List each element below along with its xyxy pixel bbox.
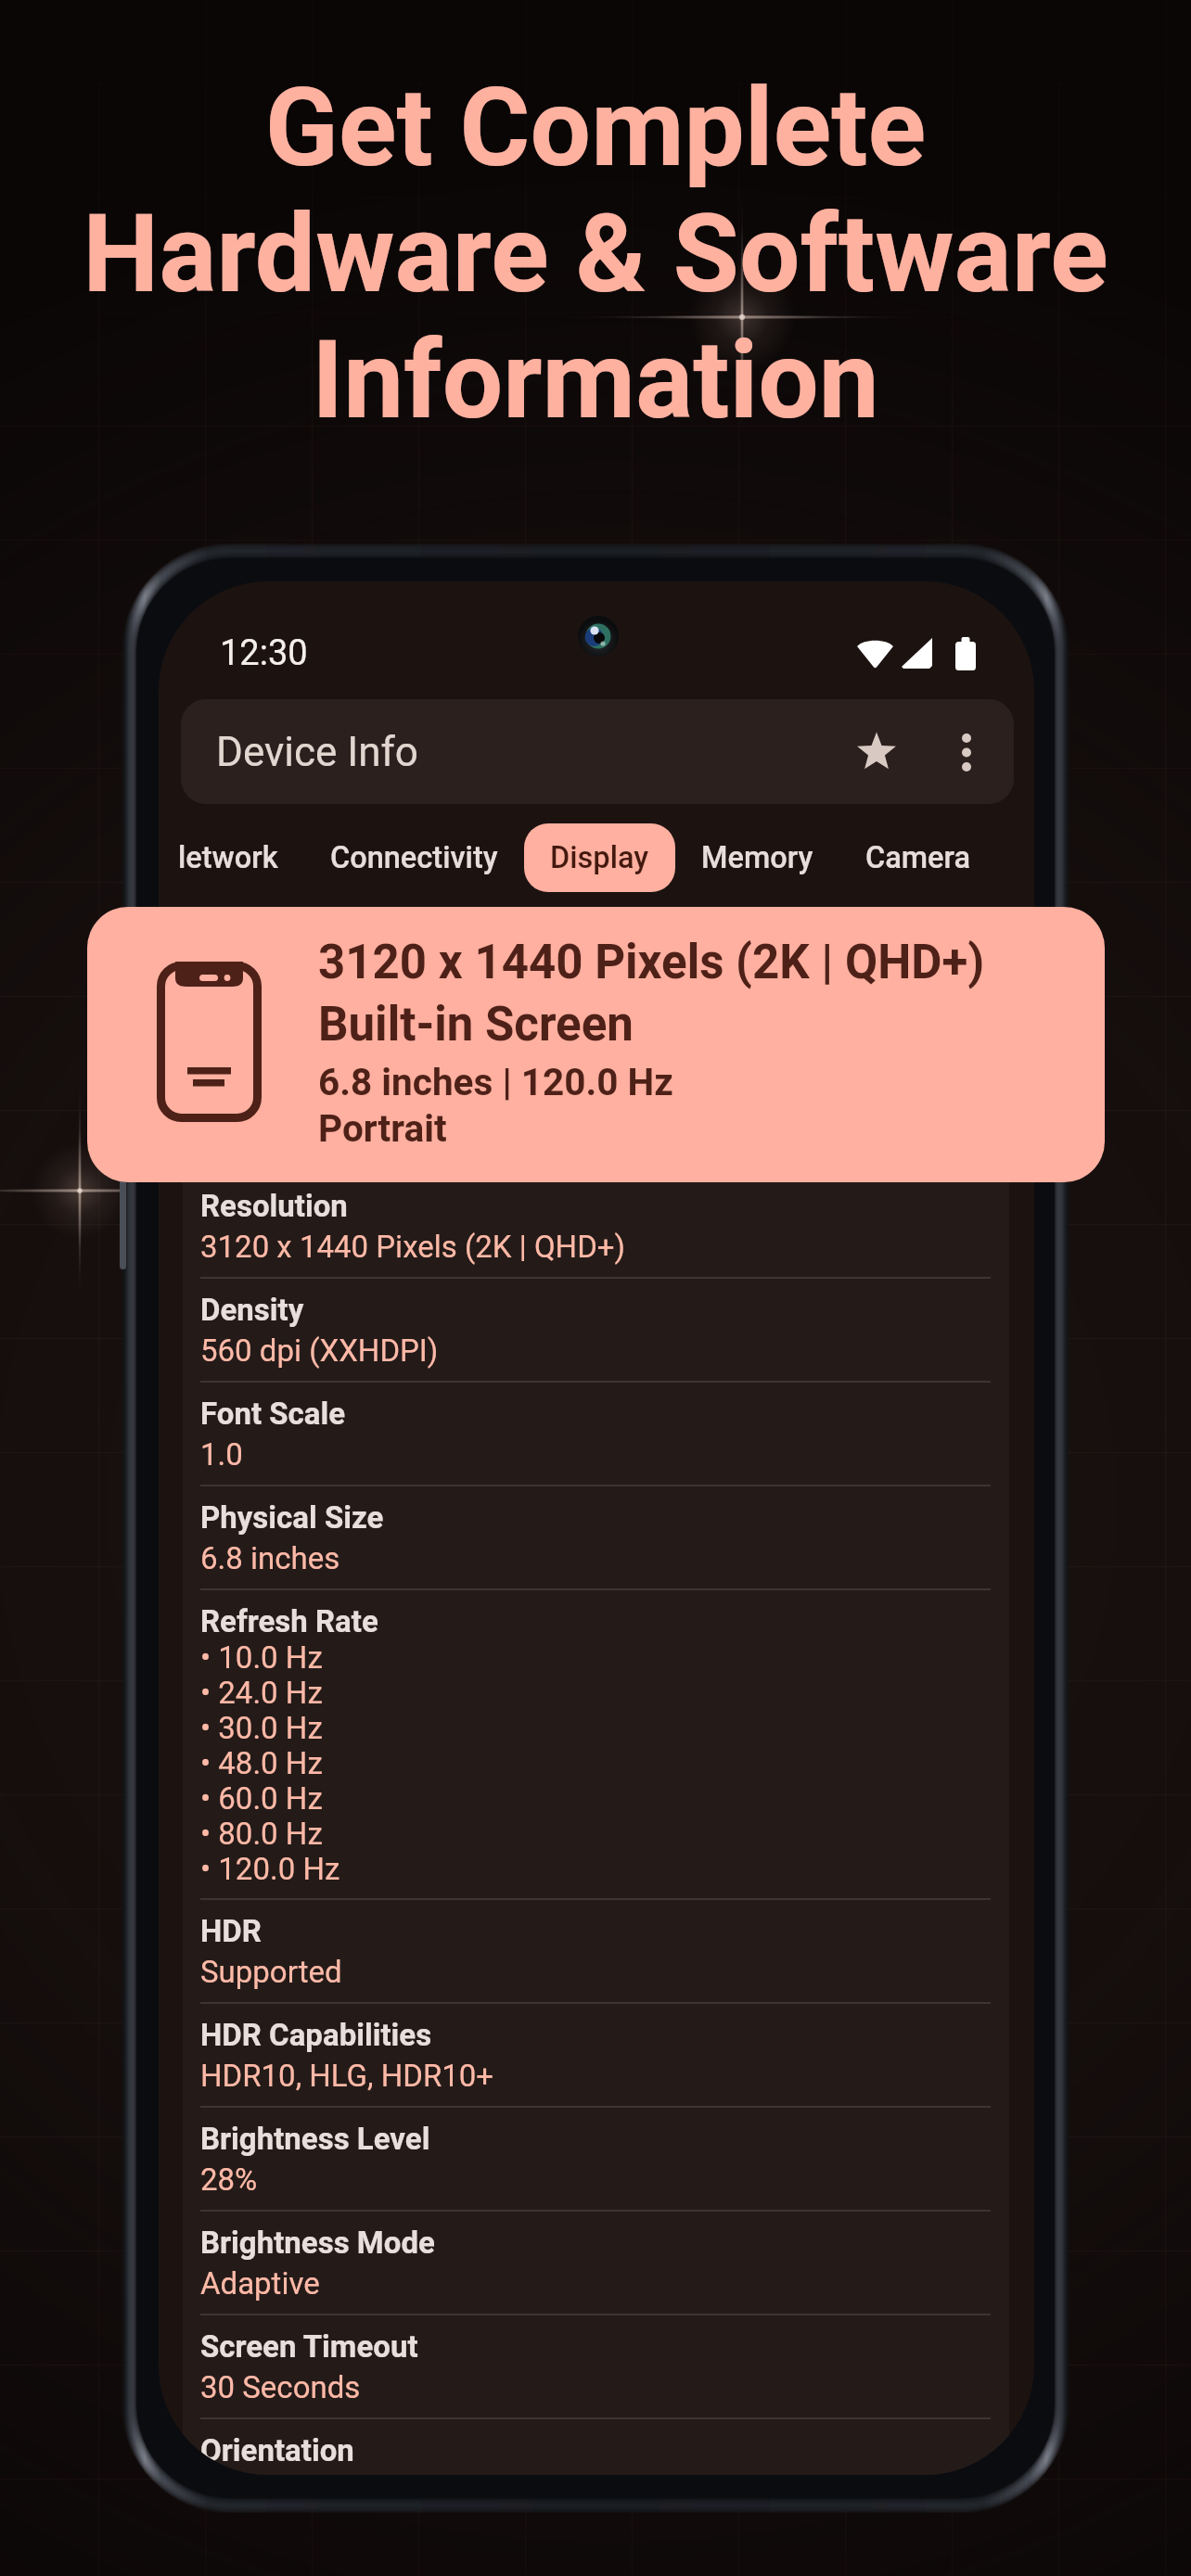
staticText: 3120 x 1440 Pixels (2K | QHD+) xyxy=(318,935,985,990)
button[interactable]: 3120 x 1440 Pixels (2K | QHD+) xyxy=(87,907,1105,1182)
staticText: • 24.0 Hz xyxy=(200,1675,323,1710)
button[interactable]: Brightness Mode xyxy=(183,2212,1009,2315)
staticText: Get Complete xyxy=(0,65,1191,191)
staticText: Display xyxy=(550,840,649,875)
staticText: Density xyxy=(200,1292,304,1328)
staticText: Physical Size xyxy=(200,1499,384,1536)
staticText: 560 dpi (XXHDPI) xyxy=(200,1333,439,1369)
staticText: • 48.0 Hz xyxy=(200,1745,323,1780)
staticText: 6.8 inches xyxy=(200,1540,340,1576)
staticText: Font Scale xyxy=(200,1396,346,1432)
staticText: HDR Capabilities xyxy=(200,2017,432,2053)
staticText: Information xyxy=(0,317,1191,443)
button[interactable]: Brightness Level xyxy=(183,2108,1009,2212)
staticText: • 10.0 Hz xyxy=(200,1639,323,1675)
button[interactable]: Orientation xyxy=(183,2419,1009,2475)
button[interactable]: Camera xyxy=(839,823,997,892)
staticText: 28% xyxy=(200,2162,258,2198)
staticText: Portrait xyxy=(318,1106,447,1150)
button[interactable]: Memory xyxy=(675,823,839,892)
staticText: • 60.0 Hz xyxy=(200,1780,323,1816)
staticText: Device Info xyxy=(216,728,418,776)
button[interactable]: Favorite xyxy=(847,722,906,782)
staticText: 12:30 xyxy=(220,632,308,674)
button[interactable]: HDR Capabilities xyxy=(183,2004,1009,2108)
staticText: Hardware & Software xyxy=(0,191,1191,317)
button[interactable]: Display xyxy=(524,823,675,892)
button[interactable]: HDR xyxy=(183,1900,1009,2004)
staticText: HDR10, HLG, HDR10+ xyxy=(200,2058,494,2094)
staticText: HDR xyxy=(200,1913,262,1949)
button[interactable]: Density xyxy=(183,1279,1009,1383)
staticText: Supported xyxy=(200,1954,342,1990)
button[interactable]: Refresh Rate xyxy=(183,1590,1009,1900)
button[interactable]: Font Scale xyxy=(183,1383,1009,1486)
staticText: 1.0 xyxy=(200,1436,243,1473)
button[interactable]: Device Info xyxy=(181,699,1014,804)
button[interactable]: Physical Size xyxy=(183,1486,1009,1590)
staticText: 3120 x 1440 Pixels (2K | QHD+) xyxy=(200,1229,626,1265)
button[interactable]: Resolution xyxy=(183,1175,1009,1279)
staticText: letwork xyxy=(178,840,278,875)
staticText: 6.8 inches | 120.0 Hz xyxy=(318,1060,673,1103)
staticText: Adaptive xyxy=(200,2265,320,2302)
staticText: • 30.0 Hz xyxy=(200,1710,323,1745)
button[interactable]: Screen Timeout xyxy=(183,2315,1009,2419)
staticText: Brightness Level xyxy=(200,2121,430,2157)
staticText: Connectivity xyxy=(330,840,498,875)
staticText: 30 Seconds xyxy=(200,2369,361,2405)
staticText: Resolution xyxy=(200,1188,348,1224)
staticText: Screen Timeout xyxy=(200,2328,418,2365)
staticText: Brightness Mode xyxy=(200,2225,435,2261)
button[interactable]: Connectivity xyxy=(304,823,524,892)
staticText: Orientation xyxy=(200,2432,354,2468)
staticText: Refresh Rate xyxy=(200,1603,378,1639)
staticText: • 80.0 Hz xyxy=(200,1816,323,1851)
button[interactable]: letwork xyxy=(159,823,304,892)
staticText: • 120.0 Hz xyxy=(200,1851,340,1886)
staticText: Built-in Screen xyxy=(318,997,634,1052)
staticText: Portrait xyxy=(200,2473,302,2475)
staticText: Memory xyxy=(701,840,813,875)
button[interactable]: More options xyxy=(937,722,996,782)
staticText: Camera xyxy=(865,840,971,875)
